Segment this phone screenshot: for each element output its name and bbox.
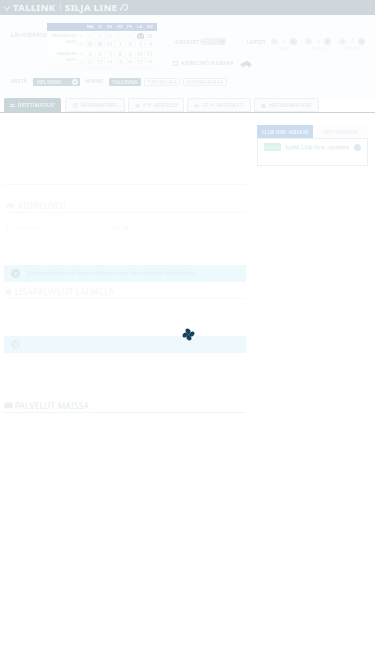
- button[interactable]: CLUB ONE -ASIAKAS: [257, 125, 313, 138]
- button[interactable]: 31: [105, 40, 115, 48]
- button[interactable]: 27: [135, 32, 145, 40]
- staticText: 29: [87, 41, 93, 47]
- staticText: 27: [138, 34, 144, 40]
- button[interactable]: Decrease: [271, 38, 278, 45]
- button[interactable]: Tallink Silja Line home: [3, 0, 129, 15]
- button[interactable]: Increase: [219, 38, 226, 45]
- button[interactable]: TALLINNA: [109, 78, 141, 86]
- staticText: AHVENANMAA: [186, 79, 224, 86]
- button[interactable]: Syötä Club One -numero: [284, 143, 351, 151]
- button[interactable]: 2: [125, 40, 135, 48]
- button[interactable]: 16: [125, 58, 135, 66]
- staticText: 30: [97, 41, 103, 47]
- button[interactable]: Increase: [290, 38, 297, 45]
- staticText: TALLINNA: [112, 79, 138, 86]
- button[interactable]: REITTIMATKAT: [4, 98, 61, 112]
- button[interactable]: 9: [125, 50, 135, 58]
- staticText: 17: [137, 59, 143, 65]
- button[interactable]: YRITYSASIAKAS: [313, 125, 368, 138]
- button[interactable]: 7: [105, 50, 115, 58]
- staticText: 23: [97, 33, 103, 39]
- staticText: 26: [127, 33, 133, 39]
- staticText: 7: [109, 51, 112, 57]
- staticText: 5 H -RISTEILY: [143, 102, 178, 109]
- button[interactable]: 30: [95, 40, 105, 48]
- button[interactable]: Info: [354, 144, 361, 151]
- button[interactable]: 8: [115, 50, 125, 58]
- button[interactable]: 29: [85, 40, 95, 48]
- button[interactable]: 18: [145, 58, 155, 66]
- staticText: YRITYSASIAKAS: [323, 129, 359, 135]
- staticText: 10: [137, 51, 143, 57]
- button[interactable]: 10: [135, 50, 145, 58]
- staticText: PE: [127, 24, 133, 30]
- staticText: 31: [107, 41, 113, 47]
- button[interactable]: TUKHOLMA: [144, 78, 180, 86]
- button[interactable]: 13: [95, 58, 105, 66]
- staticText: 6-11 V.: [312, 46, 325, 51]
- button[interactable]: Decrease: [339, 38, 346, 45]
- button[interactable]: 15: [115, 58, 125, 66]
- button[interactable]: 5: [85, 50, 95, 58]
- button[interactable]: 12: [85, 58, 95, 66]
- button[interactable]: 22 H -RISTEILYT: [187, 98, 251, 112]
- button[interactable]: 3: [135, 40, 145, 48]
- button[interactable]: 14: [105, 58, 115, 66]
- staticText: 8: [119, 51, 122, 57]
- button[interactable]: HELSINKI: [33, 78, 80, 86]
- staticText: KESÄKUU: [57, 51, 77, 57]
- button[interactable]: AJONEUVO MUKANA: [173, 59, 252, 68]
- staticText: 24: [79, 59, 84, 65]
- staticText: CLUB ONE -ASIAKAS: [262, 129, 309, 135]
- staticText: 22: [87, 33, 93, 39]
- button[interactable]: 1: [115, 40, 125, 48]
- button[interactable]: 11: [145, 50, 155, 58]
- staticText: 1: [119, 41, 122, 47]
- button[interactable]: AHVENANMAA: [183, 78, 227, 86]
- button[interactable]: Increase: [358, 38, 365, 45]
- button[interactable]: Decrease: [200, 38, 207, 45]
- staticText: SU: [147, 24, 153, 30]
- staticText: PALVELUT MAISSA: [15, 400, 90, 411]
- staticText: 16: [127, 59, 133, 65]
- staticText: !: [15, 270, 17, 278]
- button[interactable]: 17: [135, 58, 145, 66]
- button[interactable]: Decrease: [305, 38, 312, 45]
- staticText: MISTÄ: [11, 78, 28, 85]
- staticText: 0: [351, 38, 354, 45]
- staticText: 24: [107, 33, 113, 39]
- staticText: 21: [79, 33, 84, 39]
- button[interactable]: Increase: [324, 38, 331, 45]
- button[interactable]: 4: [145, 40, 155, 48]
- button[interactable]: PÄIVÄMATKAT: [65, 98, 125, 112]
- staticText: 22 H -RISTEILYT: [202, 102, 244, 109]
- staticText: 23: [79, 51, 84, 57]
- staticText: 0: [283, 38, 286, 45]
- staticText: TO: [117, 24, 123, 30]
- button[interactable]: 28: [145, 32, 155, 40]
- staticText: 15: [117, 59, 123, 65]
- button[interactable]: 5 H -RISTEILY: [128, 98, 184, 112]
- staticText: HOTELLIMATKAT: [269, 102, 312, 109]
- button[interactable]: HOTELLIMATKAT: [254, 98, 319, 112]
- staticText: 12-17 V.: [345, 46, 360, 51]
- button[interactable]: 6: [95, 50, 105, 58]
- staticText: TOUKOKUU: [52, 33, 77, 39]
